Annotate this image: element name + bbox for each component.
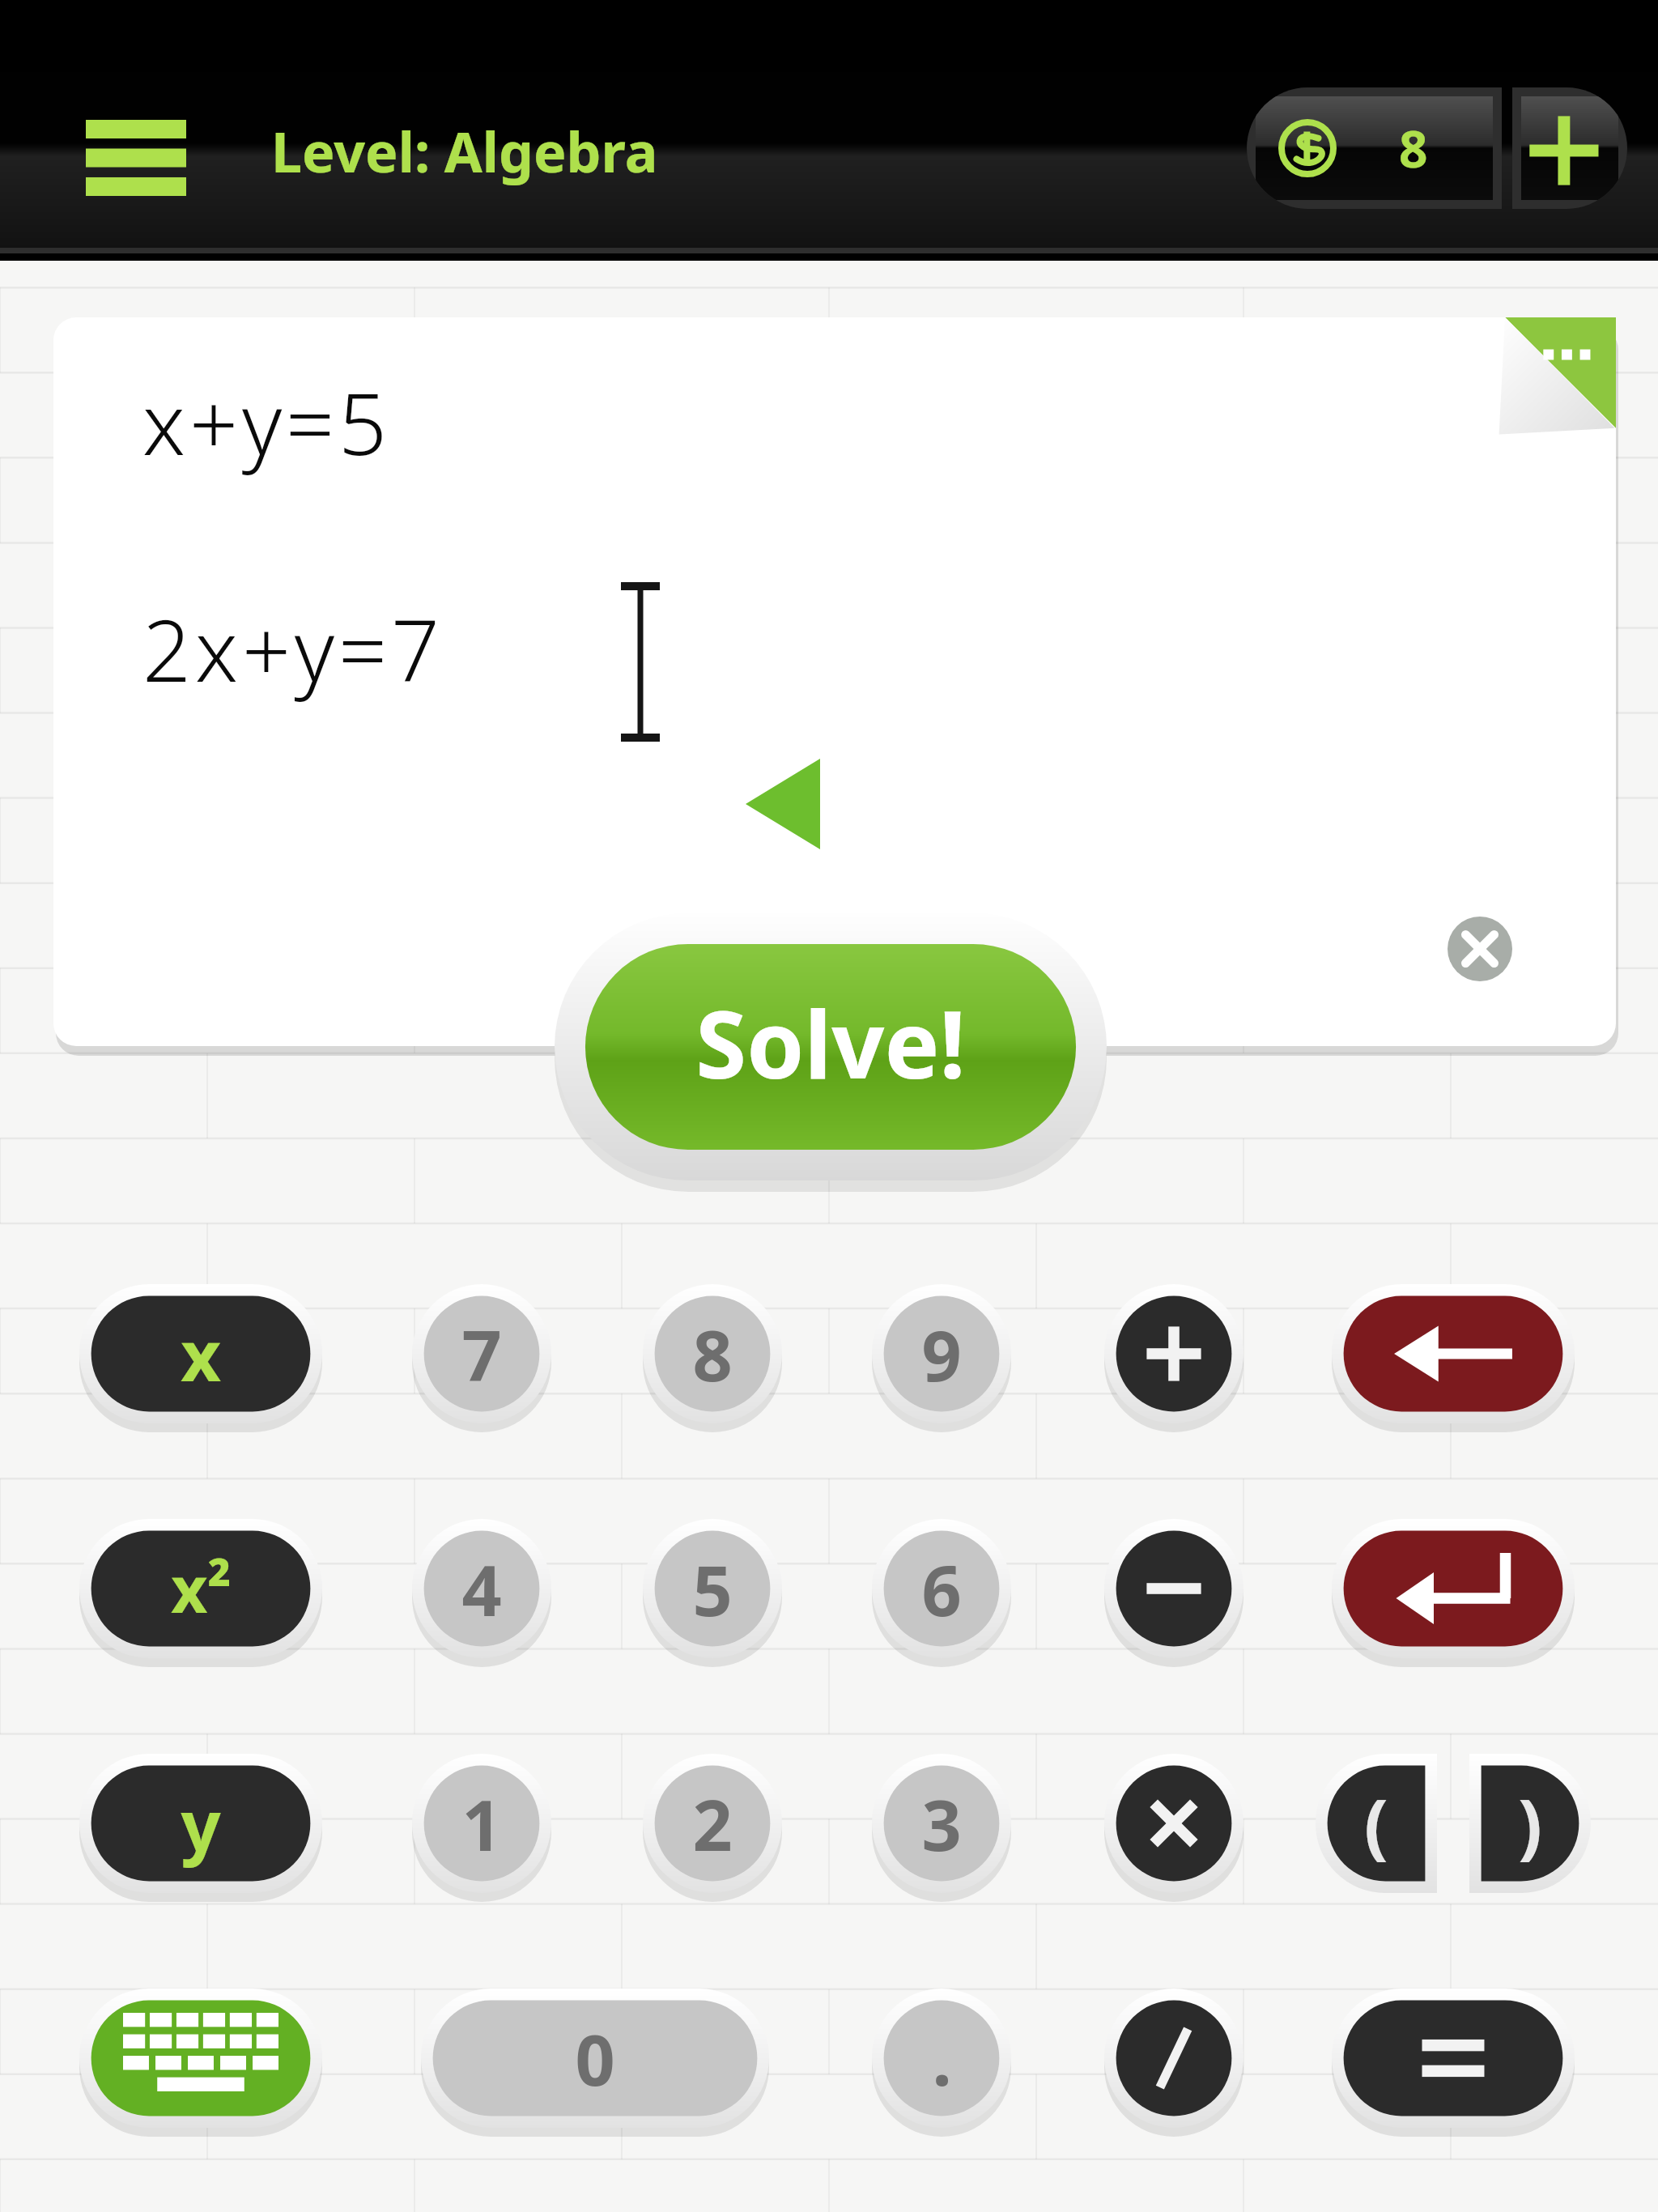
button[interactable]: 7 — [412, 1284, 551, 1423]
staticText: 6 — [921, 1542, 962, 1636]
button[interactable]: Close parenthesis — [1469, 1754, 1591, 1893]
button[interactable]: Menu — [86, 120, 186, 196]
button[interactable]: y — [79, 1754, 322, 1893]
staticText: 8 — [1399, 114, 1428, 182]
button[interactable]: 6 — [872, 1519, 1011, 1658]
button[interactable]: x² — [79, 1519, 322, 1658]
button[interactable]: Enter — [1332, 1519, 1575, 1658]
staticText: 3 — [921, 1776, 962, 1871]
button[interactable]: 4 — [412, 1519, 551, 1658]
staticText: x² — [171, 1546, 232, 1631]
staticText: 2 — [692, 1776, 733, 1871]
button[interactable]: Clear — [1448, 917, 1512, 981]
button[interactable]: Add coins — [1512, 87, 1627, 209]
other: Previous line — [746, 759, 820, 849]
staticText: 5 — [692, 1542, 733, 1636]
button[interactable]: 9 — [872, 1284, 1011, 1423]
button[interactable]: Divide — [1104, 1989, 1243, 2128]
staticText: 7 — [461, 1307, 502, 1402]
button[interactable]: Solve! — [555, 913, 1107, 1180]
staticText: 4 — [461, 1542, 502, 1636]
staticText: y — [181, 1776, 221, 1871]
button[interactable]: 2 — [643, 1754, 782, 1893]
button[interactable]: Backspace — [1332, 1284, 1575, 1423]
button[interactable]: Equals — [1332, 1989, 1575, 2128]
button[interactable]: More options — [1493, 317, 1616, 440]
button[interactable]: Multiply — [1104, 1754, 1243, 1893]
button[interactable]: . — [872, 1989, 1011, 2128]
staticText: 9 — [921, 1307, 962, 1402]
button[interactable]: 3 — [872, 1754, 1011, 1893]
staticText: 1 — [461, 1776, 502, 1871]
staticText: 8 — [692, 1307, 733, 1402]
staticText: Solve! — [695, 980, 966, 1105]
staticText: Level: Algebra — [271, 113, 658, 189]
staticText: 2x+y=7 — [142, 591, 444, 707]
button[interactable]: 5 — [643, 1519, 782, 1658]
staticText: x — [181, 1307, 221, 1402]
staticText: 0 — [575, 2011, 615, 2106]
button[interactable]: Minus — [1104, 1519, 1243, 1658]
button[interactable]: 1 — [412, 1754, 551, 1893]
staticText: ) — [1518, 1775, 1542, 1872]
button[interactable]: 8 — [643, 1284, 782, 1423]
button[interactable]: 8 — [1247, 87, 1502, 209]
button[interactable]: Open parenthesis — [1316, 1754, 1437, 1893]
staticText: ( — [1364, 1775, 1388, 1872]
button[interactable]: x — [79, 1284, 322, 1423]
button[interactable]: Plus — [1104, 1284, 1243, 1423]
button[interactable]: 0 — [421, 1989, 769, 2128]
staticText: x+y=5 — [142, 364, 392, 480]
button[interactable]: Keyboard — [79, 1989, 322, 2128]
staticText: . — [932, 2011, 952, 2106]
